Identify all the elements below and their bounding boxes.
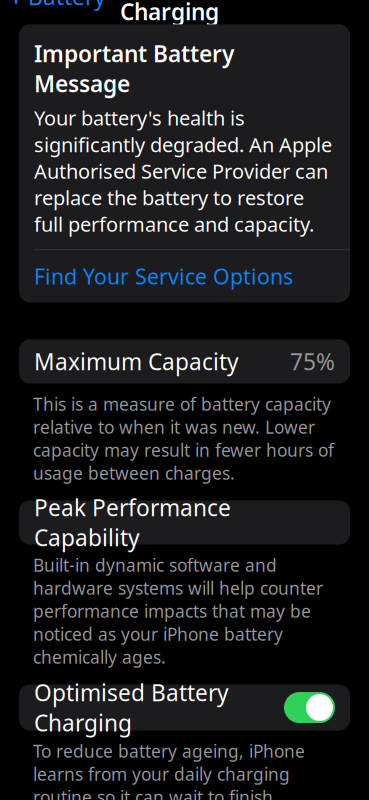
button[interactable]: Maximum Capacity xyxy=(19,339,350,383)
staticText: To reduce battery ageing, iPhone learns … xyxy=(33,740,329,800)
staticText: Peak Performance Capability xyxy=(34,492,231,553)
staticText: Important Battery Message xyxy=(34,38,234,99)
button[interactable]: Peak Performance Capability xyxy=(19,500,350,544)
staticText: This is a measure of battery capacity re… xyxy=(33,392,334,484)
staticText: Battery xyxy=(28,0,106,11)
button[interactable]: Optimised Battery Charging xyxy=(19,685,350,731)
staticText: Find Your Service Options xyxy=(34,262,293,290)
staticText: 75% xyxy=(290,346,335,376)
staticText: Built-in dynamic software and hardware s… xyxy=(33,553,323,669)
button[interactable]: Battery xyxy=(0,0,106,19)
button[interactable]: Find Your Service Options xyxy=(19,250,350,302)
staticText: Optimised Battery Charging xyxy=(34,677,229,738)
staticText: Your battery's health is significantly d… xyxy=(34,105,332,237)
staticText: Maximum Capacity xyxy=(34,346,239,376)
staticText: Battery Health & Charging xyxy=(120,0,302,26)
